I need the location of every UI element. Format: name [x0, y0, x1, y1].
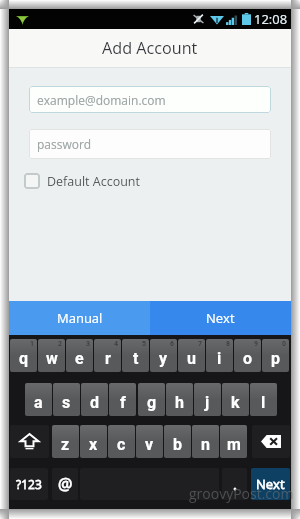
button[interactable]: i	[206, 339, 233, 372]
staticText: 7	[198, 340, 203, 348]
staticText: l	[261, 393, 266, 412]
button[interactable]: p	[262, 339, 289, 372]
staticText: Manual	[57, 309, 103, 327]
staticText: e	[75, 349, 84, 368]
staticText: 3	[86, 340, 91, 348]
staticText: b	[173, 435, 182, 454]
button[interactable]: y	[150, 339, 177, 372]
staticText: o	[243, 349, 253, 368]
staticText: y	[159, 349, 168, 368]
button[interactable]: .	[222, 468, 247, 500]
button[interactable]: v	[136, 425, 163, 458]
button[interactable]: example@domain.com	[29, 86, 271, 113]
button[interactable]: x	[80, 425, 107, 458]
button[interactable]: q	[10, 339, 37, 372]
staticText: password	[37, 136, 92, 152]
button[interactable]: Default Account	[24, 171, 140, 191]
staticText: example@domain.com	[37, 92, 166, 108]
staticText: Next	[206, 309, 235, 327]
button[interactable]: ?123	[10, 468, 48, 500]
staticText: p	[271, 349, 280, 368]
staticText: @	[58, 473, 73, 495]
staticText: a	[34, 393, 43, 412]
button[interactable]: o	[234, 339, 261, 372]
button[interactable]: z	[52, 425, 79, 458]
staticText: f	[120, 393, 126, 412]
staticText: z	[61, 435, 70, 454]
staticText: 1	[30, 340, 35, 348]
staticText: w	[46, 349, 58, 368]
staticText: x	[89, 435, 98, 454]
staticText: k	[231, 393, 240, 412]
staticText: Next	[256, 475, 285, 493]
staticText: 4	[114, 340, 119, 348]
staticText: s	[62, 393, 71, 412]
button[interactable]: a	[25, 383, 52, 416]
staticText: g	[147, 393, 157, 412]
button[interactable]: k	[222, 383, 249, 416]
button[interactable]: j	[194, 383, 221, 416]
staticText: 9	[254, 340, 259, 348]
button[interactable]: m	[220, 425, 247, 458]
button[interactable]: g	[138, 383, 165, 416]
button[interactable]: l	[250, 383, 277, 416]
staticText: 8	[226, 340, 231, 348]
button[interactable]: s	[53, 383, 80, 416]
button[interactable]: b	[164, 425, 191, 458]
button[interactable]: Space	[80, 468, 219, 500]
button[interactable]: Shift	[10, 425, 49, 458]
button[interactable]: r	[94, 339, 121, 372]
button[interactable]: Next	[150, 301, 291, 335]
staticText: Add Account	[102, 37, 198, 59]
button[interactable]: w	[38, 339, 65, 372]
button[interactable]: f	[109, 383, 136, 416]
staticText: d	[90, 393, 100, 412]
button[interactable]: d	[81, 383, 108, 416]
staticText: Default Account	[47, 173, 140, 190]
staticText: 2	[58, 340, 63, 348]
staticText: c	[117, 435, 126, 454]
staticText: t	[133, 349, 139, 368]
button[interactable]: Next	[251, 468, 290, 500]
staticText: m	[227, 435, 241, 454]
button[interactable]: u	[178, 339, 205, 372]
staticText: j	[205, 393, 210, 412]
button[interactable]: c	[108, 425, 135, 458]
staticText: r	[105, 349, 111, 368]
staticText: ?123	[16, 476, 42, 492]
staticText: 12:08	[254, 10, 288, 28]
staticText: h	[175, 393, 184, 412]
staticText: 6	[170, 340, 175, 348]
button[interactable]: @	[52, 468, 78, 500]
button[interactable]: Backspace	[252, 425, 290, 458]
button[interactable]: e	[66, 339, 93, 372]
button[interactable]: h	[166, 383, 193, 416]
button[interactable]: n	[192, 425, 219, 458]
staticText: n	[201, 435, 210, 454]
staticText: 5	[142, 340, 147, 348]
button[interactable]: t	[122, 339, 149, 372]
staticText: q	[19, 349, 29, 368]
staticText: 0	[282, 340, 287, 348]
staticText: u	[187, 349, 196, 368]
staticText: v	[145, 435, 154, 454]
button[interactable]: password	[29, 129, 271, 159]
button[interactable]: Manual	[9, 301, 150, 335]
staticText: groovyPost.com	[189, 484, 294, 503]
staticText: i	[217, 349, 222, 368]
staticText: .	[233, 474, 237, 494]
